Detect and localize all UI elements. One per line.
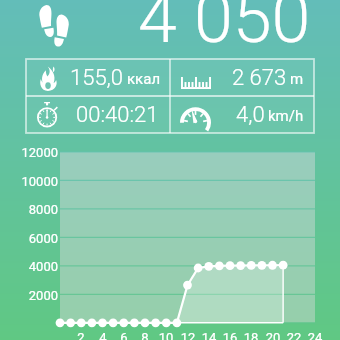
staticText: 14 xyxy=(197,330,221,340)
staticText: 00:40:21 xyxy=(76,102,159,128)
staticText: 6000 xyxy=(0,231,58,246)
staticText: 2 673 xyxy=(232,65,287,91)
button[interactable]: 155,0 xyxy=(26,59,170,96)
staticText: 4000 xyxy=(0,259,58,274)
staticText: 10000 xyxy=(0,174,58,189)
staticText: 12 xyxy=(176,330,200,340)
staticText: 12000 xyxy=(0,145,58,160)
other: Steps xyxy=(39,5,69,47)
staticText: 2 xyxy=(69,330,93,340)
staticText: 155,0 xyxy=(70,65,124,91)
staticText: 4,0 xyxy=(236,102,265,128)
button[interactable]: 00:40:21 xyxy=(26,96,170,133)
button[interactable]: 2 673 xyxy=(170,59,314,96)
staticText: 2000 xyxy=(0,288,58,303)
staticText: 16 xyxy=(218,330,242,340)
staticText: 6 xyxy=(112,330,136,340)
staticText: 18 xyxy=(239,330,263,340)
staticText: 8000 xyxy=(0,202,58,217)
staticText: 4 050 xyxy=(138,0,311,59)
staticText: ккал xyxy=(127,70,161,88)
staticText: m xyxy=(290,70,304,88)
staticText: 24 xyxy=(303,330,327,340)
staticText: 8 xyxy=(133,330,157,340)
staticText: 10 xyxy=(154,330,178,340)
staticText: 22 xyxy=(282,330,306,340)
button[interactable]: 4,0 xyxy=(170,96,314,133)
staticText: 20 xyxy=(261,330,285,340)
staticText: km/h xyxy=(268,107,304,125)
staticText: 4 xyxy=(91,330,115,340)
